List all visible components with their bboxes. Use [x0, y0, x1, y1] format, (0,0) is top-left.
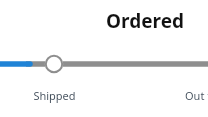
button[interactable]: Shipped [33, 88, 76, 103]
staticText: Ordered [106, 8, 184, 34]
button[interactable]: Delivery progress slider [0, 0, 208, 117]
button[interactable]: Out for delivery [185, 88, 208, 103]
